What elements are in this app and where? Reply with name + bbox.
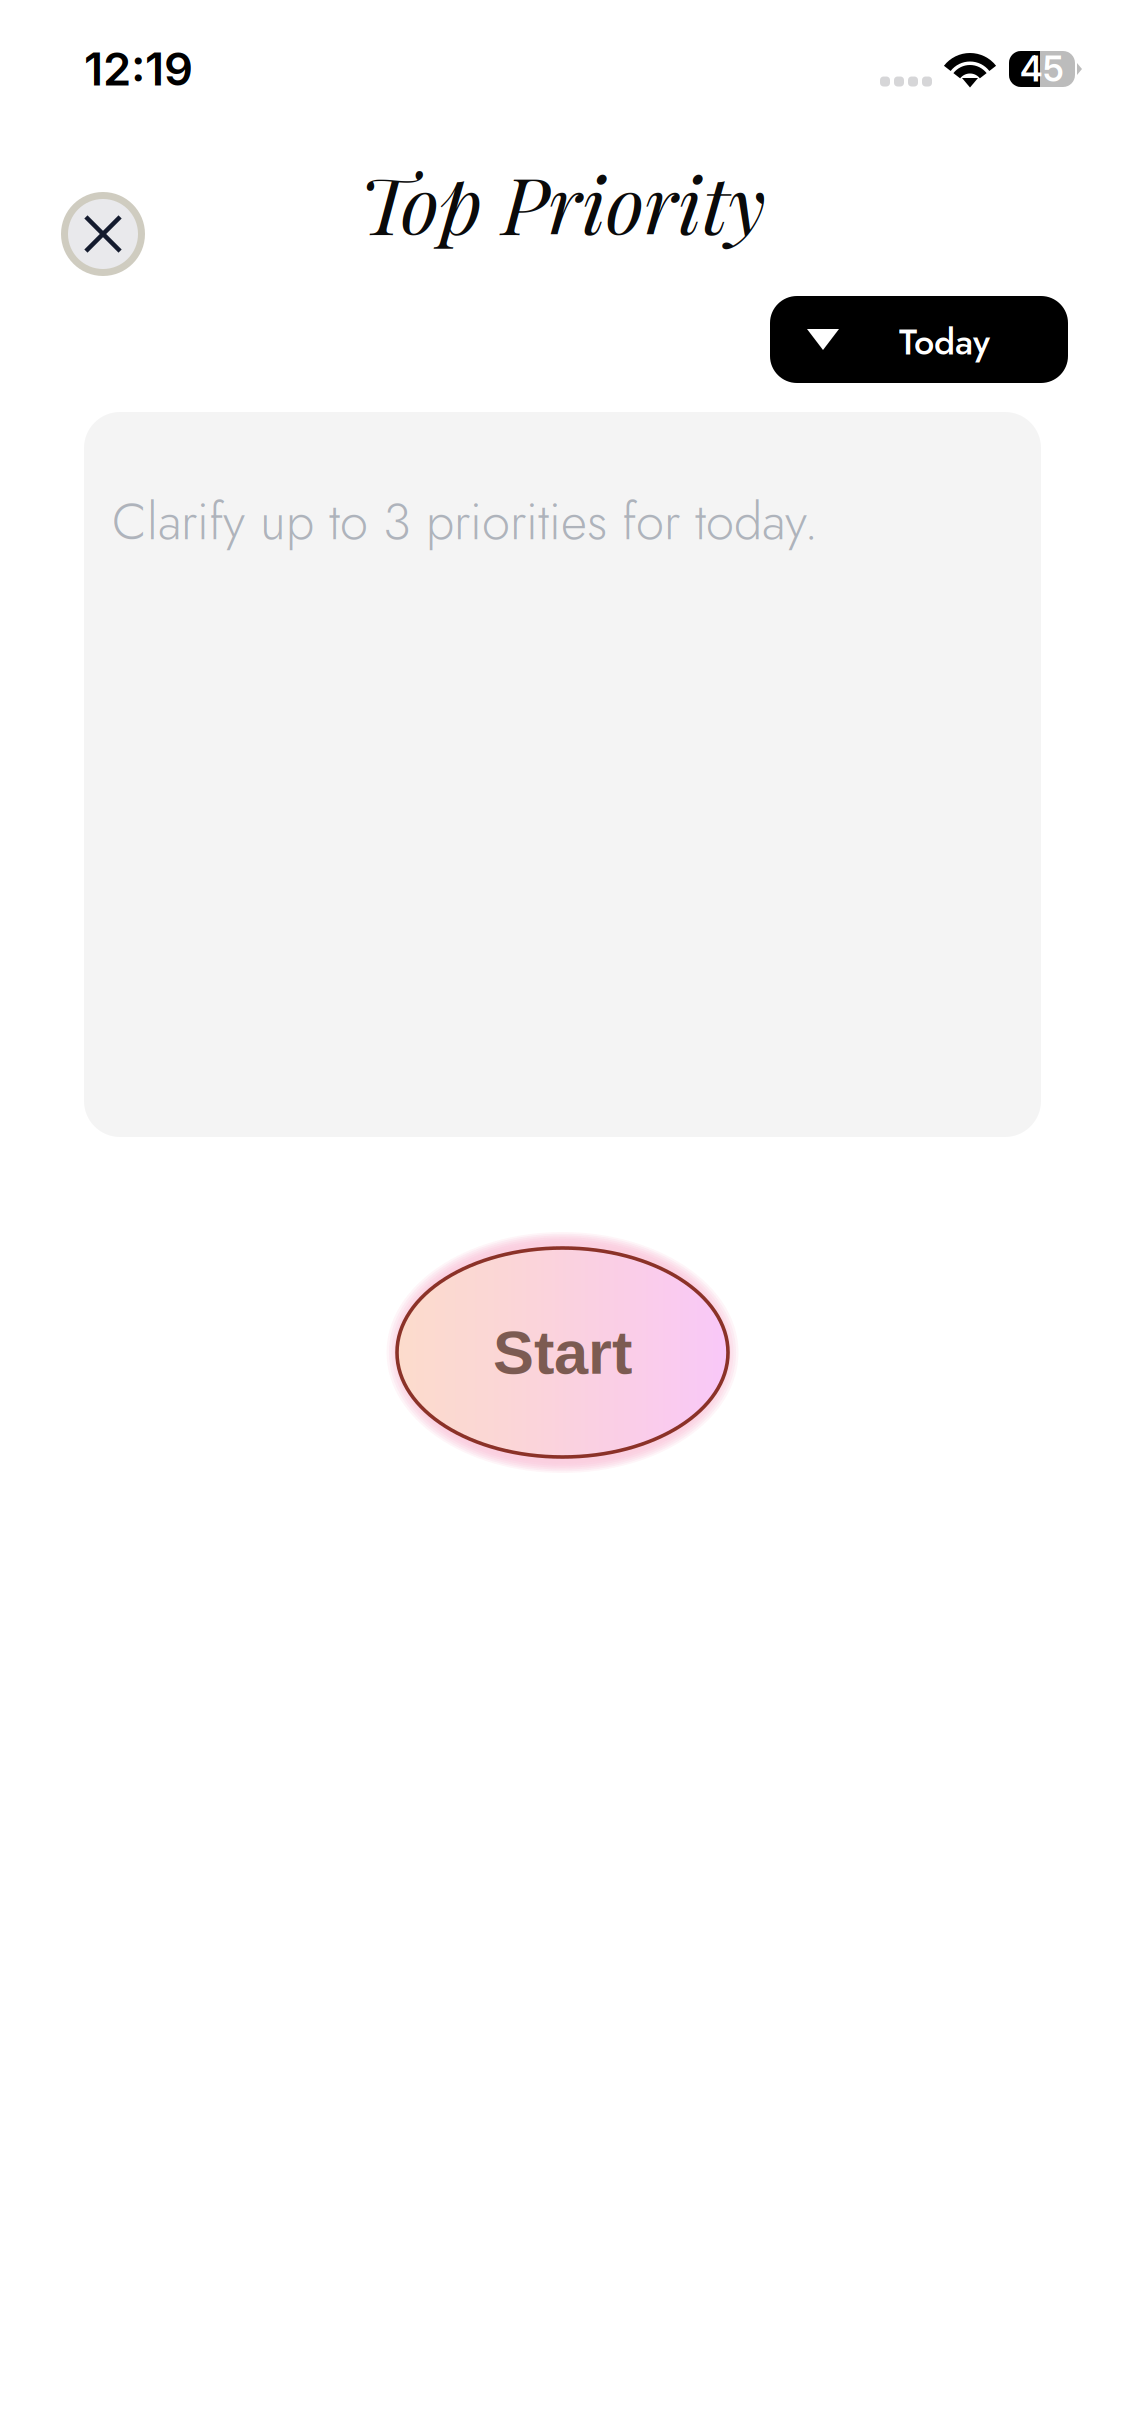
staticText: Clarify up to 3 priorities for today. [112, 485, 818, 558]
staticText: 12:19 [84, 42, 193, 96]
staticText: Today [899, 316, 990, 368]
staticText: Start [493, 1318, 632, 1387]
staticText: Top Priority [359, 150, 766, 254]
button[interactable]: Today [770, 296, 1068, 383]
button[interactable]: Start [386, 1232, 738, 1473]
staticText: 45 [1020, 48, 1064, 90]
button[interactable]: Close [38, 169, 168, 299]
